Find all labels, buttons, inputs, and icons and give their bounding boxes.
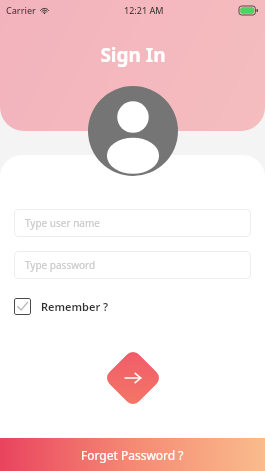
staticText: Carrier <box>6 4 36 16</box>
other: Profile picture <box>88 86 178 176</box>
staticText: Type password <box>25 258 96 272</box>
button[interactable]: Type user name <box>14 209 251 237</box>
staticText: Type user name <box>25 216 100 230</box>
staticText: Forget Password ? <box>81 447 184 463</box>
button[interactable]: Sign in <box>103 348 163 408</box>
button[interactable]: Type password <box>14 251 251 279</box>
button[interactable]: Forget Password ? <box>0 438 265 471</box>
button[interactable]: Remember ? <box>14 295 109 318</box>
staticText: Sign In <box>100 42 166 68</box>
staticText: 12:21 AM <box>124 4 164 16</box>
staticText: Remember ? <box>41 299 109 314</box>
